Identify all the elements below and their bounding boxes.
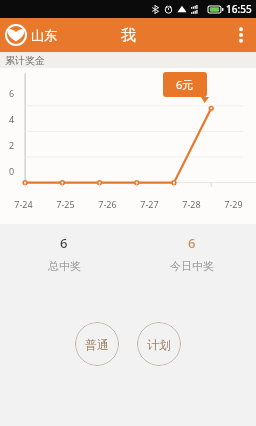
staticText: 总中奖 xyxy=(48,259,81,273)
staticText: 6 xyxy=(60,234,68,252)
staticText: 普通 xyxy=(85,337,109,352)
button[interactable]: More options xyxy=(226,18,256,52)
staticText: 我 xyxy=(121,26,136,45)
staticText: 7-26 xyxy=(98,198,117,210)
button[interactable]: 计划 xyxy=(137,322,181,366)
staticText: 累计奖金 xyxy=(5,54,45,67)
button[interactable]: 普通 xyxy=(75,322,119,366)
staticText: 7-25 xyxy=(56,198,75,210)
staticText: 7-24 xyxy=(14,198,33,210)
staticText: 7-28 xyxy=(182,198,201,210)
staticText: 4 xyxy=(9,113,15,125)
staticText: 6 xyxy=(9,87,15,99)
button[interactable]: 6 xyxy=(0,234,128,273)
staticText: 0 xyxy=(9,165,15,177)
staticText: 6元 xyxy=(176,77,194,92)
staticText: 计划 xyxy=(147,337,171,352)
staticText: 6 xyxy=(188,234,196,252)
staticText: 山东 xyxy=(31,27,57,43)
button[interactable]: 6 xyxy=(128,234,256,273)
staticText: 今日中奖 xyxy=(170,259,214,273)
staticText: 2 xyxy=(9,139,15,151)
staticText: 7-27 xyxy=(140,198,159,210)
button[interactable]: 山东 xyxy=(5,24,57,46)
staticText: 7-29 xyxy=(224,198,243,210)
staticText: 16:55 xyxy=(226,2,252,16)
